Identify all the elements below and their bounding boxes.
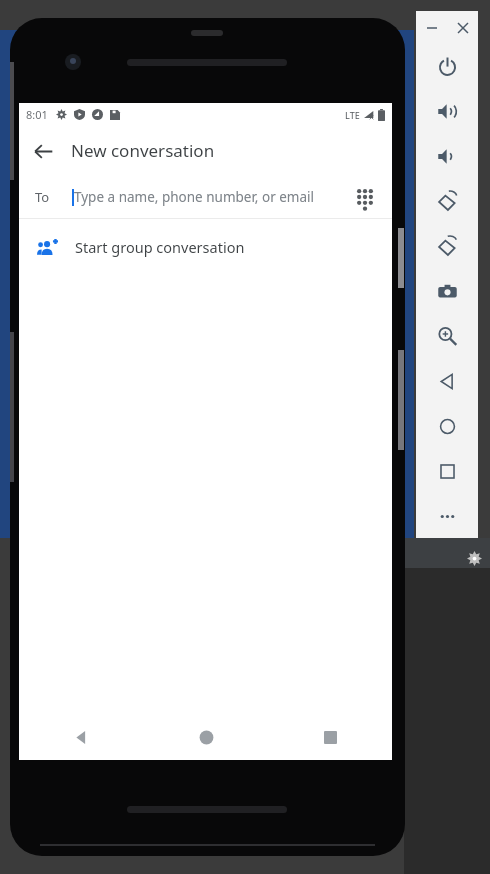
staticText: LTE [345, 109, 360, 121]
button[interactable]: Open dialpad [347, 179, 383, 215]
button[interactable]: Close [452, 17, 474, 39]
button[interactable]: Back [416, 359, 478, 404]
staticText: 8:01 [26, 107, 48, 122]
button[interactable]: Minimize [421, 17, 443, 39]
button[interactable]: Volume up [416, 89, 478, 134]
button[interactable]: Take screenshot [416, 269, 478, 314]
button[interactable]: Rotate right [416, 224, 478, 269]
staticText: Start group conversation [75, 237, 245, 257]
button[interactable]: Home [416, 404, 478, 449]
button[interactable]: Emulator settings [462, 546, 486, 570]
button[interactable]: Recent apps [268, 715, 392, 760]
button[interactable]: Navigate up [19, 127, 67, 175]
button[interactable]: More [416, 494, 478, 538]
button[interactable]: Home [144, 715, 268, 760]
button[interactable]: Zoom [416, 314, 478, 359]
button[interactable]: Back [19, 715, 144, 760]
button[interactable]: Overview [416, 449, 478, 494]
button[interactable]: Start group conversation [19, 219, 392, 275]
staticText: New conversation [71, 139, 215, 162]
button[interactable]: Rotate left [416, 179, 478, 224]
button[interactable]: Volume down [416, 134, 478, 179]
staticText: Type a name, phone number, or email [74, 188, 314, 206]
button[interactable]: Power [416, 44, 478, 89]
staticText: To [35, 188, 50, 206]
